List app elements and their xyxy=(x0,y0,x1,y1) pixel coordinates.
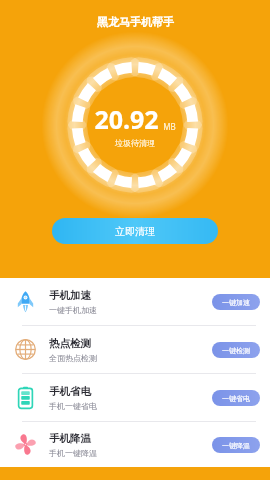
staticText: 热点检测 xyxy=(49,337,91,350)
button[interactable]: 一键省电 xyxy=(212,390,260,406)
staticText: 20.92 xyxy=(94,102,159,136)
staticText: 手机降温 xyxy=(49,432,91,445)
staticText: 一键降温 xyxy=(222,441,250,450)
staticText: 一键检测 xyxy=(222,346,250,355)
button[interactable]: 立即清理 xyxy=(52,218,218,244)
button[interactable]: 手机加速 xyxy=(0,278,270,325)
staticText: 黑龙马手机帮手 xyxy=(97,15,174,29)
staticText: 垃圾待清理 xyxy=(115,138,155,148)
staticText: 全面热点检测 xyxy=(49,353,97,363)
staticText: 一键手机加速 xyxy=(49,305,97,315)
button[interactable]: 一键检测 xyxy=(212,342,260,358)
staticText: 手机加速 xyxy=(49,289,91,302)
staticText: 立即清理 xyxy=(115,225,155,238)
staticText: 一键省电 xyxy=(222,394,250,403)
button[interactable]: 手机省电 xyxy=(0,374,270,421)
button[interactable]: 手机降温 xyxy=(0,422,270,467)
staticText: 手机一键降温 xyxy=(49,448,97,458)
staticText: 手机省电 xyxy=(49,385,91,398)
button[interactable]: 一键加速 xyxy=(212,294,260,310)
staticText: 一键加速 xyxy=(222,298,250,307)
button[interactable]: 一键降温 xyxy=(212,437,260,453)
staticText: 手机一键省电 xyxy=(49,401,97,411)
button[interactable]: 热点检测 xyxy=(0,326,270,373)
staticText: MB xyxy=(163,121,176,132)
